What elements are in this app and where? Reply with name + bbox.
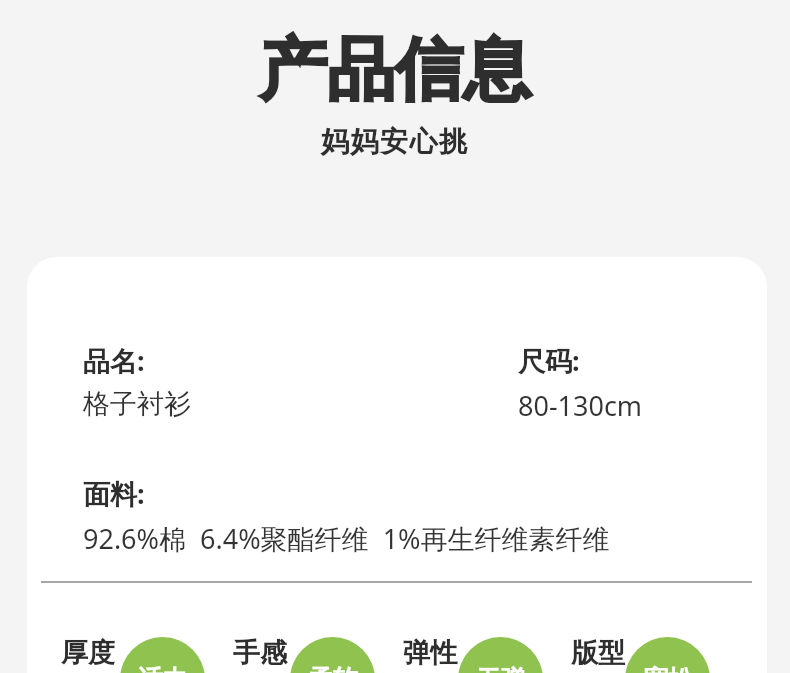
button[interactable]: 厚度 xyxy=(61,636,115,670)
staticText: 品名: xyxy=(83,342,145,379)
button[interactable]: 手感 xyxy=(233,636,287,670)
button[interactable]: 柔软 xyxy=(290,637,375,673)
button[interactable]: 弹性 xyxy=(403,636,457,670)
button[interactable]: 无弹 xyxy=(458,637,543,673)
staticText: 面料: xyxy=(83,475,145,512)
button[interactable]: 适中 xyxy=(120,637,205,673)
staticText: 手感 xyxy=(233,636,287,670)
staticText: 80-130cm xyxy=(518,387,643,424)
staticText: 版型 xyxy=(571,636,625,670)
staticText: 无弹 xyxy=(476,664,526,673)
staticText: 适中 xyxy=(138,664,188,673)
staticText: 92.6%棉 6.4%聚酯纤维 1%再生纤维素纤维 xyxy=(83,520,610,557)
staticText: 宽松 xyxy=(643,664,693,673)
staticText: 厚度 xyxy=(61,636,115,670)
staticText: 格子衬衫 xyxy=(83,387,191,421)
staticText: 弹性 xyxy=(403,636,457,670)
button[interactable]: 品名: xyxy=(27,257,767,673)
staticText: 产品信息 xyxy=(259,28,531,114)
staticText: 柔软 xyxy=(308,664,358,673)
staticText: 妈妈安心挑 xyxy=(321,124,469,159)
staticText: 尺码: xyxy=(518,342,580,379)
button[interactable]: 宽松 xyxy=(625,637,710,673)
button[interactable]: 版型 xyxy=(571,636,625,670)
